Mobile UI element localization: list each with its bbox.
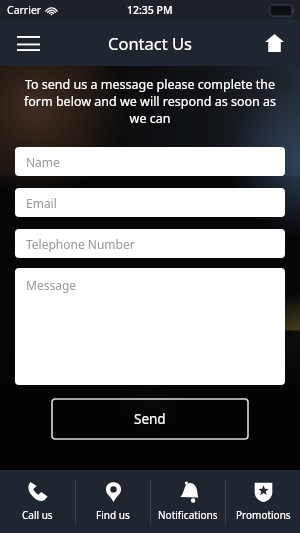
button[interactable]: Message bbox=[15, 268, 285, 385]
button[interactable]: Find us bbox=[76, 470, 150, 533]
staticText: Notifications bbox=[158, 508, 218, 522]
staticText: 12:35 PM bbox=[127, 3, 173, 17]
staticText: Send bbox=[134, 410, 166, 428]
staticText: Name bbox=[26, 154, 60, 170]
staticText: Message bbox=[26, 277, 77, 293]
button[interactable]: Notifications bbox=[151, 470, 225, 533]
button[interactable]: Telephone Number bbox=[15, 229, 285, 258]
staticText: Contact Us bbox=[108, 32, 192, 54]
staticText: Telephone Number bbox=[26, 236, 135, 252]
button[interactable]: Send bbox=[52, 399, 248, 439]
staticText: Email bbox=[26, 195, 57, 211]
button[interactable]: Email bbox=[15, 188, 285, 217]
button[interactable]: Promotions bbox=[226, 470, 300, 533]
staticText: Carrier bbox=[7, 3, 42, 17]
button[interactable]: Name bbox=[15, 147, 285, 176]
staticText: Find us bbox=[96, 508, 130, 522]
staticText: Promotions bbox=[236, 508, 291, 522]
staticText: Call us bbox=[22, 508, 53, 522]
staticText: To send us a message please complete the… bbox=[16, 76, 284, 127]
button[interactable]: Menu bbox=[8, 23, 48, 63]
button[interactable]: Call us bbox=[0, 470, 75, 533]
button[interactable]: Home bbox=[254, 23, 294, 63]
